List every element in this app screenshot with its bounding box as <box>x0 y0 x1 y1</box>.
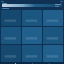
button[interactable]: Browse <box>30 62 34 64</box>
button[interactable] <box>1 27 21 44</box>
button[interactable] <box>43 45 63 62</box>
button[interactable] <box>22 45 42 62</box>
button[interactable] <box>1 45 21 62</box>
button[interactable] <box>2 4 62 7</box>
button[interactable] <box>1 10 21 26</box>
button[interactable] <box>22 10 42 26</box>
button[interactable] <box>43 27 63 44</box>
button[interactable]: Profile <box>47 62 51 64</box>
button[interactable]: Home <box>13 62 17 64</box>
button[interactable] <box>43 10 63 26</box>
button[interactable] <box>22 27 42 44</box>
